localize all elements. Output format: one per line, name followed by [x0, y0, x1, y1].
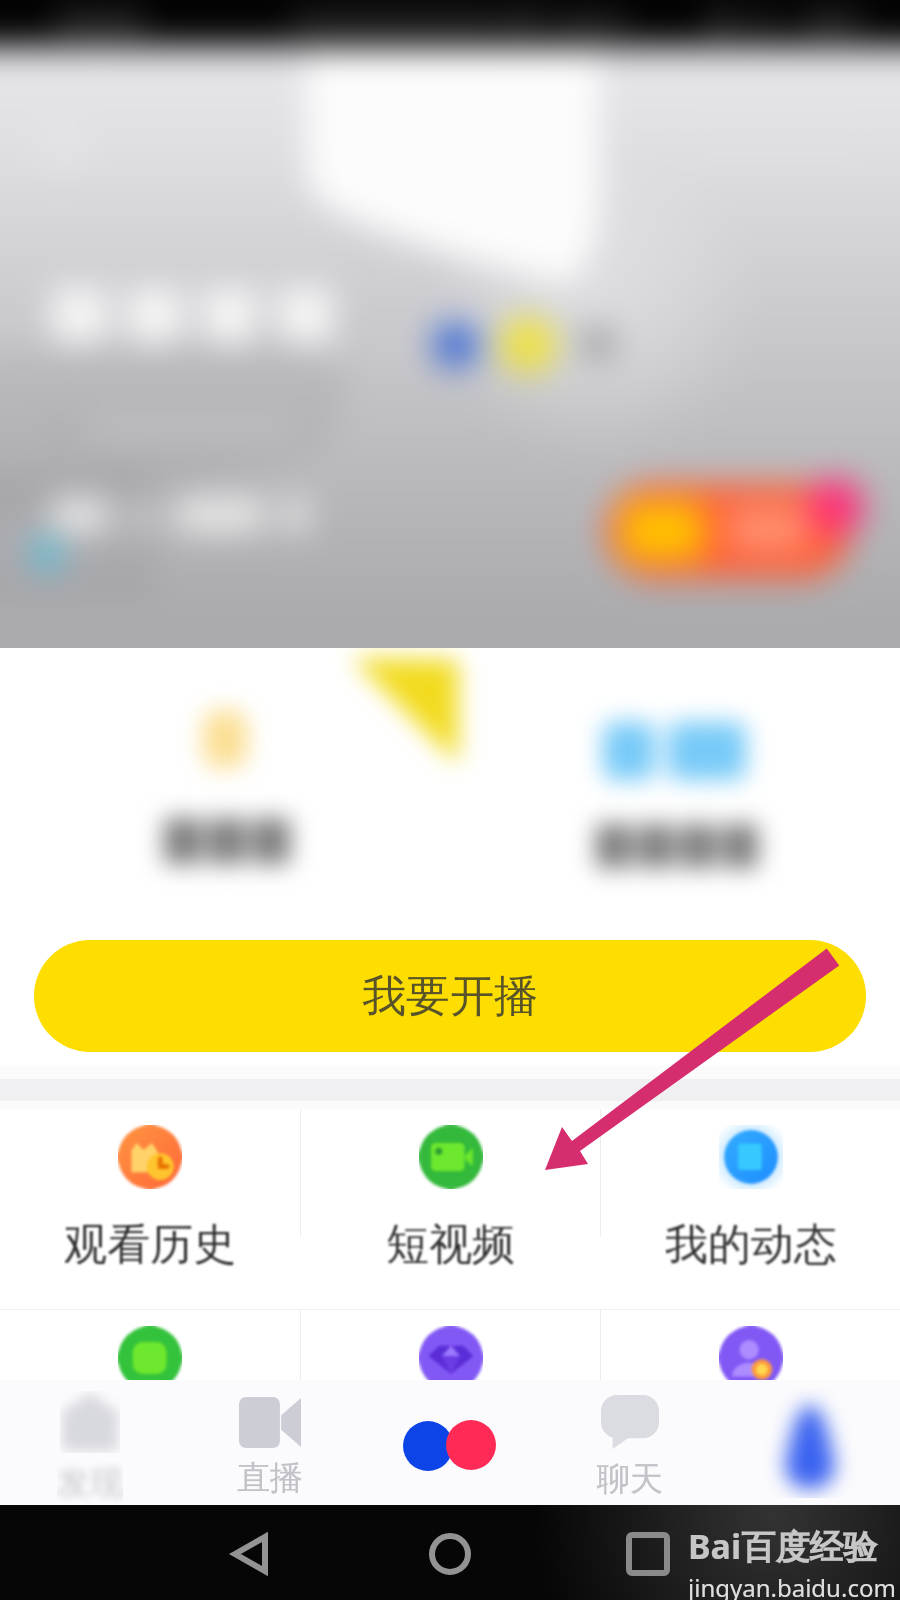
button[interactable]: 直播 — [180, 1380, 360, 1505]
button[interactable]: 我要开播 — [34, 940, 866, 1052]
button[interactable]: Recents — [608, 1530, 688, 1578]
staticText: 聊天 — [597, 1458, 663, 1500]
staticText: 个人资料 — [665, 1419, 837, 1473]
button[interactable]: 我的直播 — [0, 1310, 300, 1510]
button[interactable]: Record — [360, 1380, 540, 1505]
staticText: 发现 — [57, 1462, 123, 1504]
button[interactable]: Home — [410, 1530, 490, 1578]
button[interactable]: 发现 — [0, 1380, 180, 1505]
staticText: Bai百度经验 — [688, 1523, 878, 1569]
button[interactable]: 短视频 — [301, 1109, 600, 1309]
button[interactable]: Me — [720, 1380, 900, 1505]
staticText: 直播 — [237, 1457, 303, 1499]
button[interactable]: 聊天 — [540, 1380, 720, 1505]
button[interactable]: 我的动态 — [601, 1109, 900, 1309]
button[interactable]: Back — [210, 1530, 290, 1578]
button[interactable]: 观看历史 — [0, 1109, 300, 1309]
staticText: 我要开播 — [362, 969, 538, 1024]
staticText: 我的动态 — [665, 1218, 837, 1272]
staticText: 观看历史 — [64, 1218, 236, 1272]
staticText: 我的直播 — [64, 1419, 236, 1473]
staticText: 我的钻石 — [365, 1419, 537, 1473]
button[interactable]: 个人资料 — [601, 1310, 900, 1510]
button[interactable]: 我的钻石 — [301, 1310, 600, 1510]
staticText: jingyan.baidu.com — [688, 1571, 896, 1600]
staticText: 短视频 — [386, 1218, 515, 1272]
